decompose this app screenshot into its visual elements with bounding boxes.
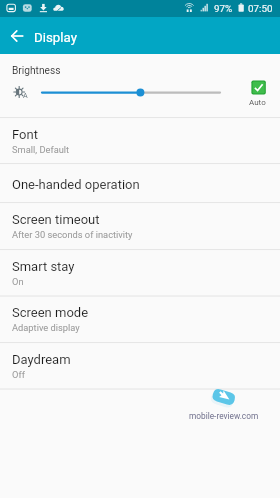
button[interactable]	[0, 250, 280, 296]
staticText: Brightness	[12, 65, 61, 77]
staticText: Display	[34, 30, 77, 46]
staticText: mobile-review.com	[189, 411, 259, 421]
button[interactable]	[0, 343, 280, 389]
staticText: Small, Default	[12, 144, 70, 155]
staticText: Auto	[249, 98, 266, 107]
staticText: One-handed operation	[12, 177, 140, 192]
button[interactable]	[0, 297, 280, 343]
staticText: A	[23, 91, 28, 99]
staticText: On	[12, 276, 24, 287]
button[interactable]	[0, 203, 280, 249]
staticText: After 30 seconds of inactivity	[12, 229, 133, 240]
button[interactable]: Auto brightness	[249, 78, 269, 108]
staticText: 97%	[214, 3, 233, 14]
button[interactable]	[0, 164, 280, 202]
staticText: Smart stay	[12, 259, 75, 274]
staticText: Screen mode	[12, 305, 89, 320]
button[interactable]: Navigate up	[5, 18, 31, 53]
staticText: Adaptive display	[12, 322, 80, 333]
staticText: Off	[12, 369, 25, 380]
staticText: 07:50	[248, 3, 273, 14]
button[interactable]	[0, 118, 280, 163]
staticText: Font	[12, 127, 38, 142]
staticText: Daydream	[12, 352, 71, 367]
staticText: Screen timeout	[12, 212, 100, 227]
